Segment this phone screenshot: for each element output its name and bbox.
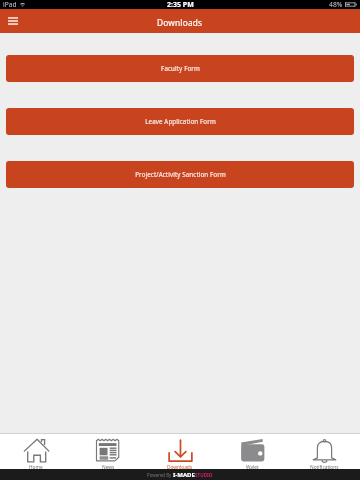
staticText: Faculty Form: [161, 64, 200, 72]
button[interactable]: Leave Application Form: [6, 108, 354, 135]
button[interactable]: Notifications: [288, 434, 360, 469]
button[interactable]: Home: [0, 434, 72, 469]
staticText: STUDIO: [195, 472, 213, 478]
staticText: Powered By: [147, 472, 173, 478]
button[interactable]: Downloads: [144, 434, 216, 469]
staticText: Leave Application Form: [145, 117, 216, 125]
button[interactable]: Project/Activity Sanction Form: [6, 161, 354, 188]
staticText: Home: [29, 464, 43, 469]
button[interactable]: Menu: [5, 13, 21, 29]
staticText: News: [102, 464, 115, 469]
staticText: 48%: [329, 0, 343, 9]
staticText: iPad: [3, 0, 17, 9]
button[interactable]: Walet: [216, 434, 288, 469]
staticText: Downloads: [167, 464, 193, 469]
staticText: Walet: [246, 464, 259, 469]
button[interactable]: Faculty Form: [6, 55, 354, 82]
staticText: Project/Activity Sanction Form: [135, 170, 226, 178]
staticText: I-MADE: [173, 471, 195, 479]
staticText: Notifications: [310, 464, 339, 469]
staticText: Downloads: [157, 17, 203, 28]
staticText: 2:35 PM: [167, 0, 194, 9]
button[interactable]: News: [72, 434, 144, 469]
